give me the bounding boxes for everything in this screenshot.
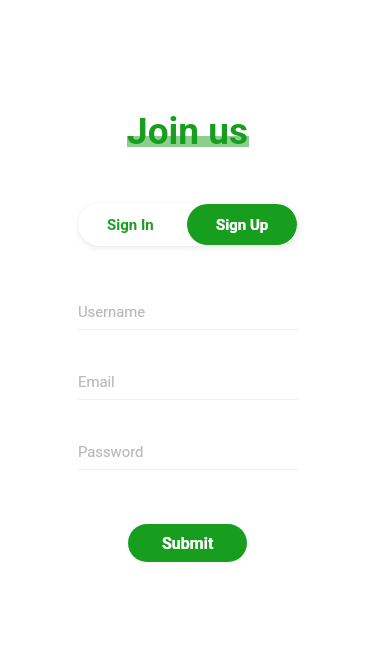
button[interactable]: Sign Up [187,204,297,245]
staticText: Password [78,443,144,460]
staticText: Username [78,303,146,320]
staticText: Sign Up [216,216,269,234]
button[interactable]: Username [78,294,298,329]
staticText: Sign In [107,216,154,234]
staticText: Submit [162,534,214,553]
staticText: Join us [127,110,249,153]
button[interactable]: Password [78,434,298,469]
button[interactable]: Email [78,364,298,399]
button[interactable]: Sign In [78,203,187,246]
button[interactable]: Submit [128,524,247,562]
staticText: Email [78,373,115,390]
